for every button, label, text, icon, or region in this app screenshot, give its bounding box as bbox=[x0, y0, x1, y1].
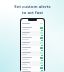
button[interactable]: Alert status bbox=[22, 51, 43, 56]
button[interactable]: Alert status bbox=[22, 41, 43, 46]
other: Alert status bbox=[40, 52, 43, 54]
button[interactable]: Alert status bbox=[22, 66, 43, 71]
staticText: Set custom alerts to act fast bbox=[14, 4, 51, 15]
other: Alert status bbox=[40, 37, 43, 39]
button[interactable]: Alert status bbox=[22, 56, 43, 61]
other: Alert status bbox=[40, 27, 43, 29]
button[interactable]: Alert status bbox=[22, 71, 43, 72]
other: Alert status bbox=[40, 32, 43, 34]
button[interactable]: Alert status bbox=[22, 26, 43, 31]
button[interactable]: Alert status bbox=[22, 61, 43, 66]
button[interactable] bbox=[22, 23, 43, 24]
other: Alert status bbox=[40, 67, 43, 69]
other: Alert status bbox=[40, 71, 43, 72]
button[interactable]: Set custom alerts to act fast bbox=[4, 4, 60, 15]
other: Alert status bbox=[40, 57, 43, 59]
button[interactable]: Alert status bbox=[22, 36, 43, 41]
other: Alert status bbox=[40, 47, 43, 49]
other: Alert status bbox=[40, 42, 43, 44]
button[interactable]: Alert status bbox=[22, 46, 43, 51]
button[interactable]: Alert status bbox=[22, 31, 43, 36]
other: Alert status bbox=[40, 62, 43, 64]
